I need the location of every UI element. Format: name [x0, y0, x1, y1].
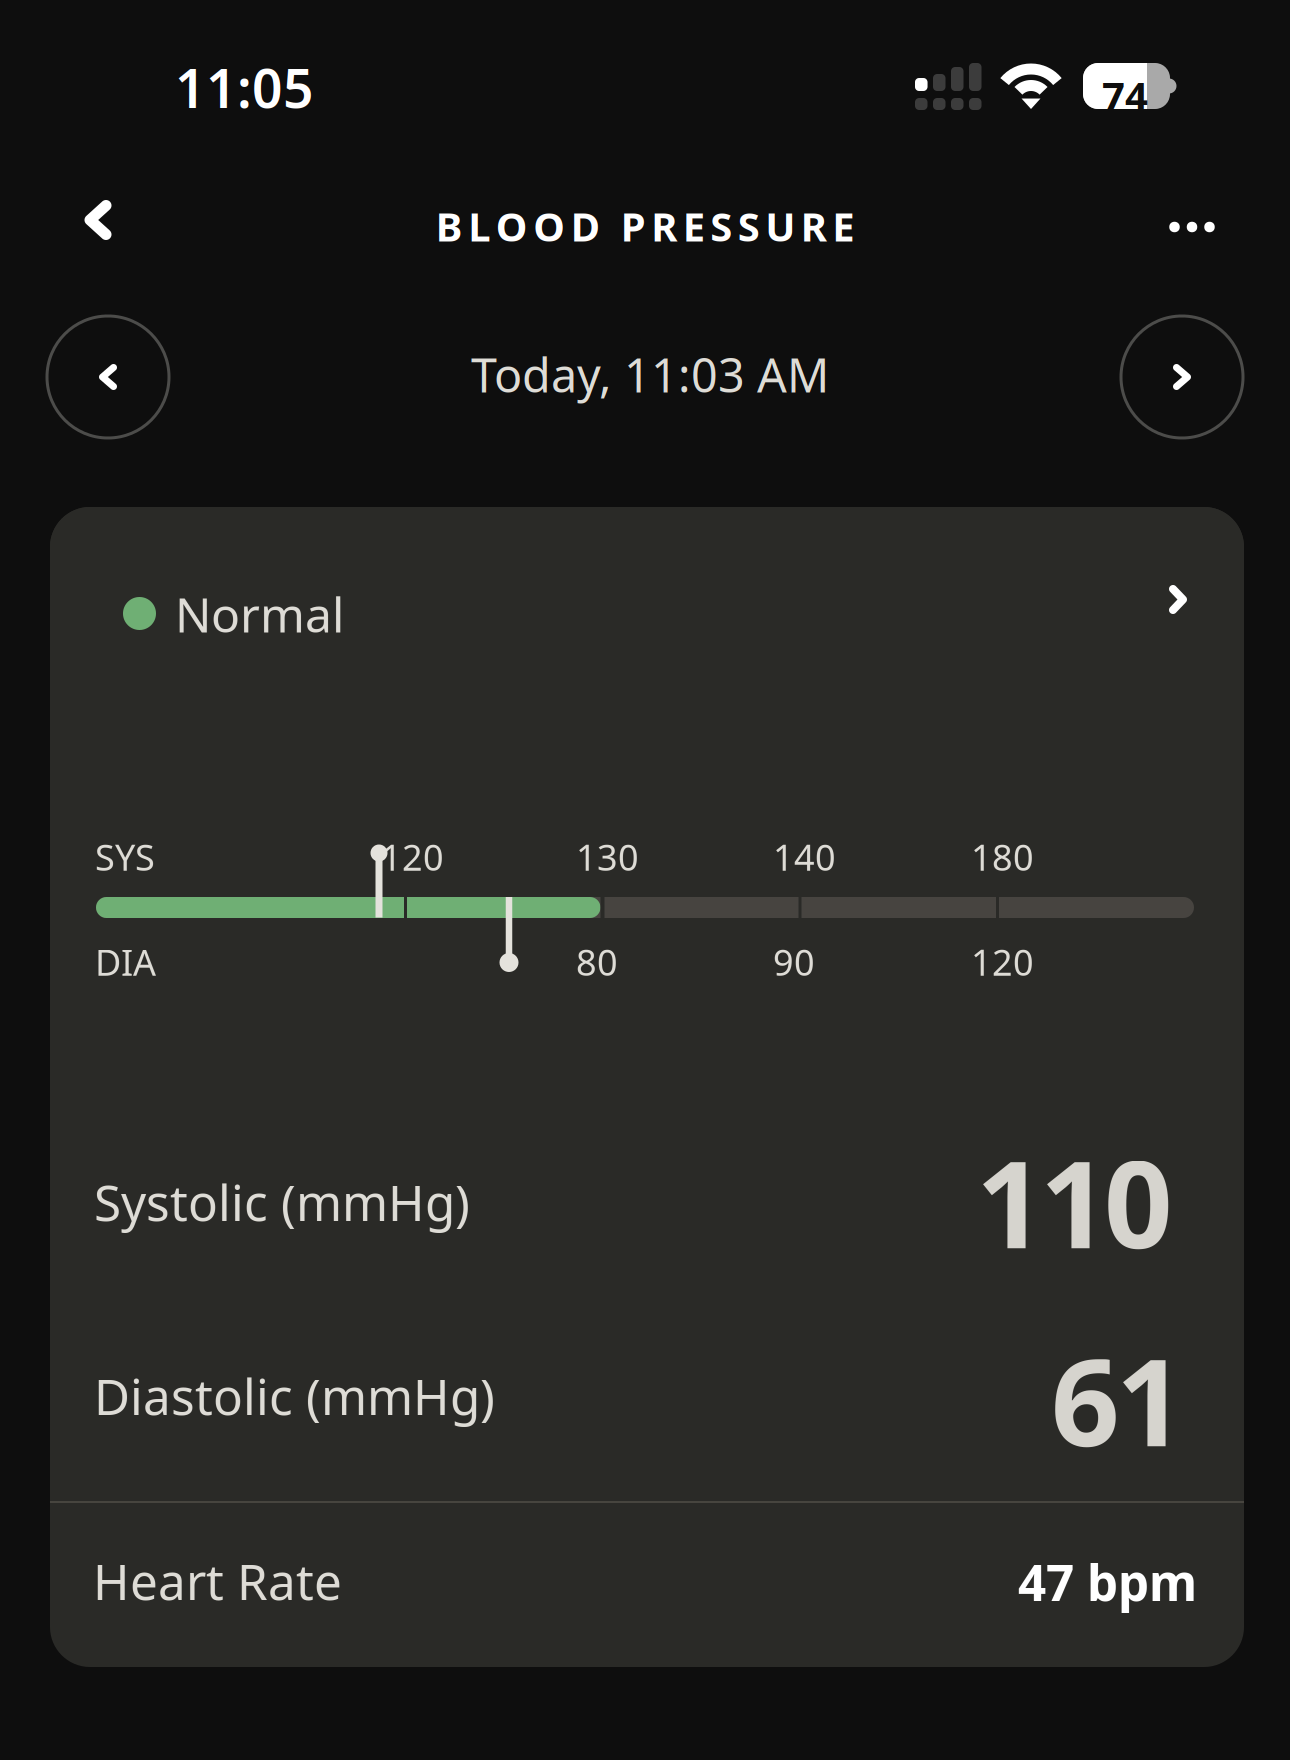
button[interactable]: Next reading	[1121, 316, 1243, 438]
staticText: Diastolic (mmHg)	[94, 1363, 495, 1428]
staticText: 90	[773, 938, 815, 986]
staticText: 120	[381, 833, 444, 881]
staticText: BLOOD PRESSURE	[436, 199, 854, 252]
button[interactable]: Previous reading	[47, 316, 169, 438]
staticText: 130	[576, 833, 639, 881]
button[interactable]: More options	[1142, 177, 1242, 277]
staticText: Normal	[175, 582, 344, 646]
staticText: 80	[576, 938, 618, 986]
staticText: 61	[1051, 1320, 1185, 1479]
staticText: 47 bpm	[1018, 1549, 1197, 1614]
staticText: Systolic (mmHg)	[94, 1169, 470, 1234]
staticText: 120	[971, 938, 1034, 986]
button[interactable]: Normal	[50, 507, 1244, 677]
staticText: 110	[976, 1122, 1173, 1281]
staticText: 74	[1102, 69, 1148, 122]
staticText: Today, 11:03 AM	[471, 343, 829, 405]
staticText: SYS	[95, 833, 155, 881]
staticText: 11:05	[175, 52, 314, 123]
staticText: 140	[773, 833, 836, 881]
staticText: Heart Rate	[93, 1548, 342, 1613]
button[interactable]: Back	[43, 165, 153, 275]
staticText: 180	[971, 833, 1034, 881]
staticText: DIA	[95, 938, 156, 986]
